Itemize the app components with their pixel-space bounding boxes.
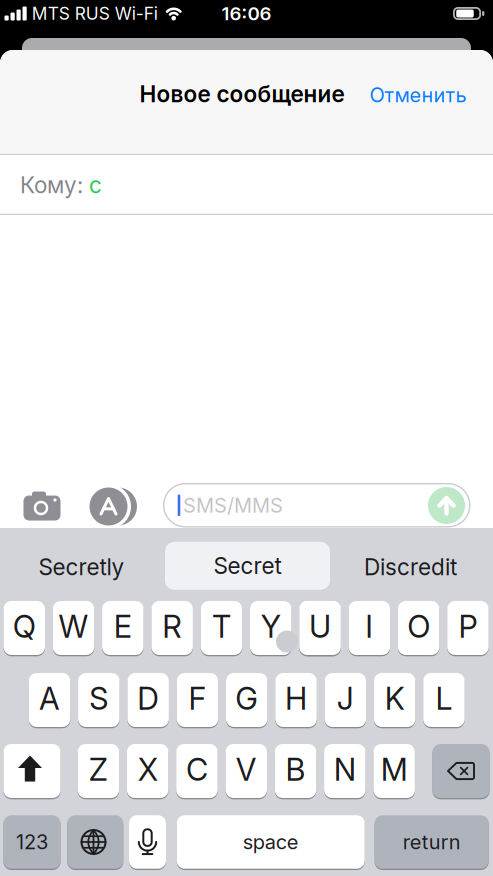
- staticText: return: [403, 830, 461, 854]
- button[interactable]: W: [53, 601, 94, 655]
- button[interactable]: Secret: [165, 542, 330, 590]
- staticText: J: [337, 680, 354, 717]
- staticText: MTS RUS Wi-Fi: [32, 3, 158, 24]
- staticText: Y: [261, 608, 281, 645]
- staticText: R: [162, 608, 182, 645]
- button[interactable]: 123: [3, 815, 60, 869]
- staticText: Отменить: [369, 83, 466, 107]
- staticText: 123: [16, 830, 48, 854]
- button[interactable]: I: [349, 601, 390, 655]
- button[interactable]: Next keyboard: [67, 815, 123, 869]
- staticText: E: [114, 608, 132, 645]
- button[interactable]: N: [324, 744, 366, 798]
- staticText: с: [89, 172, 102, 198]
- button[interactable]: G: [226, 673, 267, 727]
- staticText: V: [236, 751, 257, 788]
- staticText: S: [89, 680, 108, 717]
- button[interactable]: Apps: [89, 487, 137, 525]
- button[interactable]: Delete: [432, 744, 489, 798]
- staticText: Discredit: [364, 554, 457, 580]
- staticText: F: [188, 680, 206, 717]
- staticText: space: [243, 830, 299, 854]
- staticText: 16:06: [221, 2, 271, 24]
- button[interactable]: M: [373, 744, 415, 798]
- staticText: U: [309, 608, 331, 645]
- button[interactable]: K: [374, 673, 415, 727]
- button[interactable]: R: [151, 601, 193, 655]
- staticText: A: [39, 680, 60, 717]
- button[interactable]: S: [78, 673, 120, 727]
- button[interactable]: C: [176, 744, 218, 798]
- button[interactable]: Camera: [23, 491, 60, 520]
- button[interactable]: Send: [428, 487, 465, 524]
- button[interactable]: U: [299, 601, 341, 655]
- button[interactable]: V: [225, 744, 267, 798]
- button[interactable]: D: [127, 673, 169, 727]
- staticText: D: [137, 680, 159, 717]
- button[interactable]: Shift: [3, 744, 60, 798]
- staticText: B: [285, 751, 305, 788]
- button[interactable]: Отменить: [266, 83, 466, 107]
- staticText: I: [365, 608, 373, 645]
- staticText: U: [309, 608, 331, 645]
- button[interactable]: H: [275, 673, 317, 727]
- button[interactable]: T: [201, 601, 242, 655]
- button[interactable]: A: [29, 673, 70, 727]
- button[interactable]: Y: [250, 601, 291, 655]
- staticText: SMS/MMS: [183, 494, 283, 517]
- button[interactable]: Secretly: [38, 554, 124, 580]
- button[interactable]: Z: [78, 744, 119, 798]
- button[interactable]: J: [325, 673, 366, 727]
- staticText: X: [138, 751, 158, 788]
- button[interactable]: B: [275, 744, 316, 798]
- button[interactable]: Discredit: [364, 554, 457, 580]
- staticText: G: [235, 680, 258, 717]
- button[interactable]: space: [177, 815, 365, 869]
- staticText: K: [385, 680, 405, 717]
- staticText: H: [285, 680, 307, 717]
- button[interactable]: Dictation: [129, 815, 166, 869]
- button[interactable]: O: [398, 601, 439, 655]
- button[interactable]: return: [375, 815, 489, 869]
- button[interactable]: Q: [3, 601, 45, 655]
- staticText: T: [212, 608, 231, 645]
- staticText: M: [381, 751, 408, 788]
- staticText: Secret: [213, 552, 281, 579]
- button[interactable]: E: [102, 601, 144, 655]
- staticText: Кому:: [20, 172, 89, 198]
- button[interactable]: P: [447, 601, 489, 655]
- staticText: Secretly: [38, 554, 124, 580]
- button[interactable]: L: [423, 673, 465, 727]
- button[interactable]: X: [127, 744, 168, 798]
- staticText: N: [334, 751, 356, 788]
- staticText: P: [458, 608, 477, 645]
- staticText: Новое сообщение: [139, 81, 344, 107]
- staticText: C: [186, 751, 208, 788]
- staticText: O: [407, 608, 430, 645]
- staticText: Z: [89, 751, 108, 788]
- staticText: Q: [13, 608, 36, 645]
- button[interactable]: Кому:: [0, 155, 493, 215]
- staticText: W: [58, 608, 88, 645]
- button[interactable]: SMS/MMS: [163, 483, 470, 527]
- staticText: L: [435, 680, 452, 717]
- button[interactable]: F: [177, 673, 218, 727]
